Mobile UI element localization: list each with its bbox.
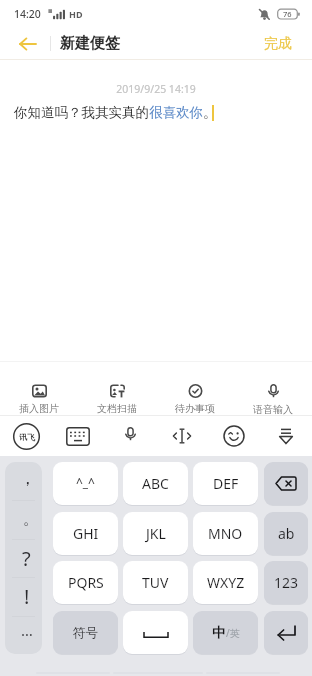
button[interactable] (123, 611, 188, 654)
button[interactable]: 文档扫描 (78, 362, 156, 415)
staticText: TUV (142, 573, 169, 592)
staticText: 76 (283, 9, 292, 19)
staticText: GHI (73, 524, 99, 543)
staticText: 123 (274, 573, 299, 592)
button[interactable]: ! (5, 577, 42, 615)
button[interactable] (264, 462, 308, 505)
button[interactable]: DEF (193, 462, 258, 505)
button[interactable]: JKL (123, 512, 188, 555)
staticText: JKL (146, 524, 166, 543)
staticText: 中 (212, 624, 226, 641)
button[interactable]: GHI (53, 512, 118, 555)
button[interactable]: ABC (123, 462, 188, 505)
staticText: ? (22, 545, 31, 572)
button[interactable]: TUV (123, 561, 188, 604)
button[interactable] (208, 416, 260, 456)
staticText: ^_^ (76, 474, 95, 490)
staticText: ab (278, 524, 295, 543)
button[interactable]: MNO (193, 512, 258, 555)
staticText: … (21, 620, 33, 640)
button[interactable]: ， (5, 462, 42, 500)
button[interactable]: 。 (5, 500, 42, 538)
button[interactable] (156, 416, 208, 456)
button[interactable]: 待办事项 (156, 362, 234, 415)
button[interactable]: ^_^ (53, 462, 118, 505)
staticText: 。 (23, 510, 38, 529)
button[interactable] (260, 416, 312, 456)
staticText: 2019/9/25 14:19 (0, 82, 312, 96)
staticText: 讯飞 (19, 432, 35, 442)
staticText: 文档扫描 (97, 402, 137, 415)
staticText: MNO (208, 524, 243, 543)
staticText: PQRS (68, 573, 104, 592)
button[interactable] (264, 611, 308, 654)
button[interactable] (0, 28, 44, 59)
button[interactable]: 中 (193, 611, 258, 654)
staticText: HD (69, 8, 83, 20)
staticText: DEF (213, 474, 239, 493)
button[interactable]: … (5, 616, 42, 654)
button[interactable]: 讯飞 (0, 416, 52, 456)
button[interactable]: 完成 (248, 28, 312, 59)
staticText: 插入图片 (19, 402, 59, 415)
button[interactable] (104, 416, 156, 456)
staticText: /英 (226, 626, 240, 640)
button[interactable]: ? (5, 539, 42, 577)
button[interactable]: WXYZ (193, 561, 258, 604)
staticText: 14:20 (14, 7, 41, 21)
staticText: 完成 (264, 35, 292, 53)
button[interactable]: ab (264, 512, 308, 555)
staticText: 语音输入 (253, 403, 293, 415)
staticText: ABC (142, 474, 169, 493)
staticText: 新建便签 (60, 34, 120, 53)
staticText: WXYZ (207, 573, 245, 592)
button[interactable]: 123 (264, 561, 308, 604)
staticText: 待办事项 (175, 402, 215, 415)
button[interactable]: 语音输入 (234, 362, 312, 415)
button[interactable]: 符号 (53, 611, 118, 654)
button[interactable]: 插入图片 (0, 362, 78, 415)
staticText: ! (24, 583, 30, 610)
staticText: 符号 (73, 625, 98, 641)
staticText: 你知道吗？我其实真的很喜欢你。 (14, 104, 217, 121)
button[interactable] (52, 416, 104, 456)
button[interactable]: PQRS (53, 561, 118, 604)
staticText: ， (19, 468, 36, 489)
